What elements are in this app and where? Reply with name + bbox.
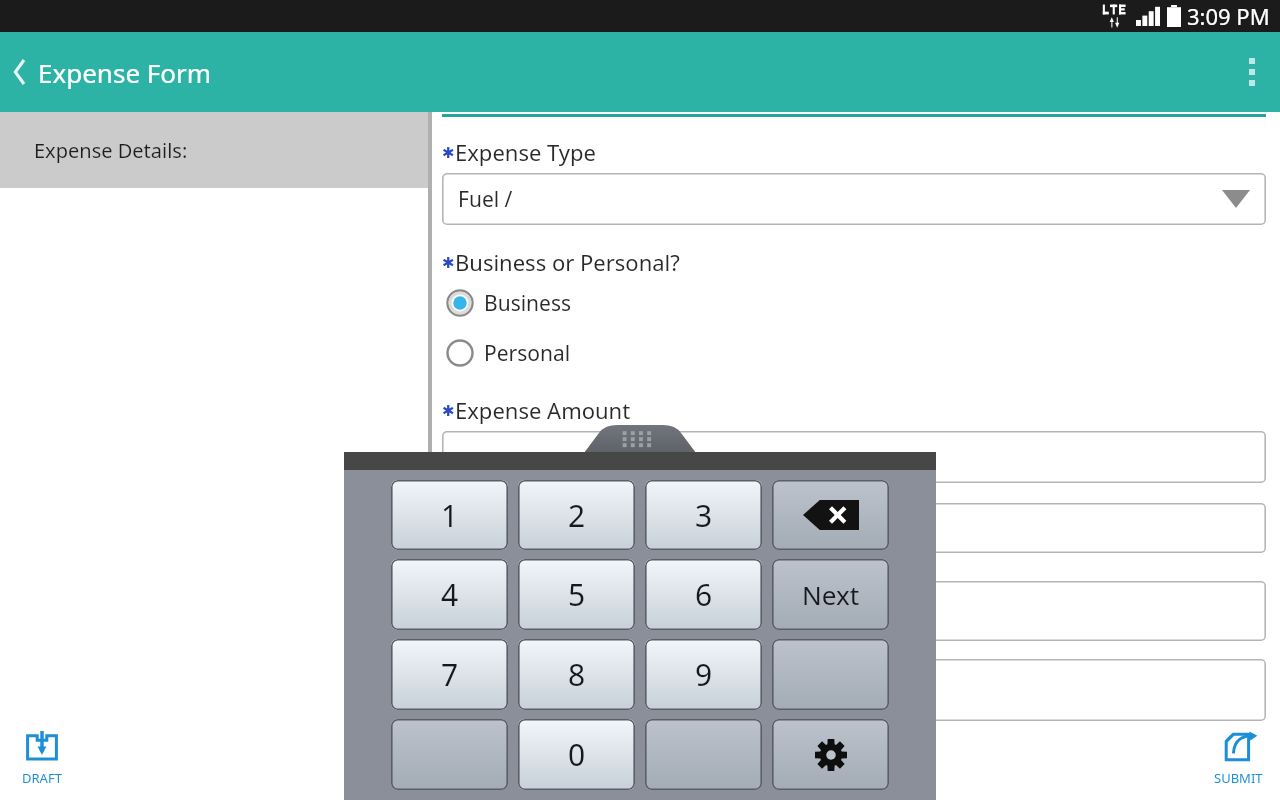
staticText: DRAFT <box>22 769 62 787</box>
button[interactable]: Expense Details: <box>0 112 428 188</box>
button[interactable] <box>442 431 1266 483</box>
button[interactable] <box>442 581 1266 641</box>
staticText: 9 <box>695 654 713 695</box>
button[interactable]: Next <box>772 559 889 630</box>
staticText: 8 <box>568 654 586 695</box>
button[interactable]: Backspace <box>772 480 889 550</box>
staticText: ✱ <box>442 254 455 271</box>
button[interactable]: More options <box>1224 32 1280 112</box>
staticText: Expense Details: <box>34 137 188 164</box>
staticText: 7 <box>441 654 459 695</box>
staticText: 5 <box>568 574 586 615</box>
button[interactable]: Blank key <box>391 719 508 790</box>
staticText: Expense Type <box>455 137 597 167</box>
button[interactable]: 7 <box>391 639 508 710</box>
staticText: 6 <box>695 574 713 615</box>
button[interactable]: Blank key <box>645 719 762 790</box>
button[interactable] <box>442 503 1266 553</box>
button[interactable]: Business <box>446 283 572 323</box>
button[interactable]: Back <box>0 32 40 112</box>
staticText: Next <box>802 577 860 612</box>
button[interactable] <box>442 659 1266 721</box>
staticText: 3 <box>695 495 713 536</box>
staticText: ✱ <box>442 402 455 419</box>
button[interactable]: 8 <box>518 639 635 710</box>
staticText: 1 <box>441 495 459 536</box>
staticText: SUBMIT <box>1214 769 1263 787</box>
staticText: Business or Personal? <box>455 247 680 277</box>
button[interactable]: 6 <box>645 559 762 630</box>
staticText: Personal <box>484 339 571 368</box>
staticText: 4 <box>441 574 459 615</box>
staticText: Business <box>484 289 572 318</box>
button[interactable]: Keyboard settings <box>772 719 889 790</box>
button[interactable]: Fuel / <box>442 173 1266 225</box>
button[interactable]: 5 <box>518 559 635 630</box>
button[interactable]: 9 <box>645 639 762 710</box>
button[interactable]: SUBMIT <box>1204 720 1272 794</box>
button[interactable]: Blank key <box>772 639 889 710</box>
staticText: Fuel / <box>458 185 513 214</box>
staticText: Expense Form <box>38 55 212 90</box>
staticText: 3:09 PM <box>1187 1 1270 31</box>
button[interactable]: 0 <box>518 719 635 790</box>
staticText: 2 <box>568 495 586 536</box>
button[interactable]: 2 <box>518 480 635 550</box>
button[interactable]: Personal <box>446 333 571 373</box>
staticText: ✱ <box>442 144 455 161</box>
button[interactable]: 3 <box>645 480 762 550</box>
button[interactable]: DRAFT <box>8 720 76 794</box>
staticText: 0 <box>568 734 586 775</box>
staticText: Expense Amount <box>455 395 631 425</box>
button[interactable]: 4 <box>391 559 508 630</box>
button[interactable]: 1 <box>391 480 508 550</box>
